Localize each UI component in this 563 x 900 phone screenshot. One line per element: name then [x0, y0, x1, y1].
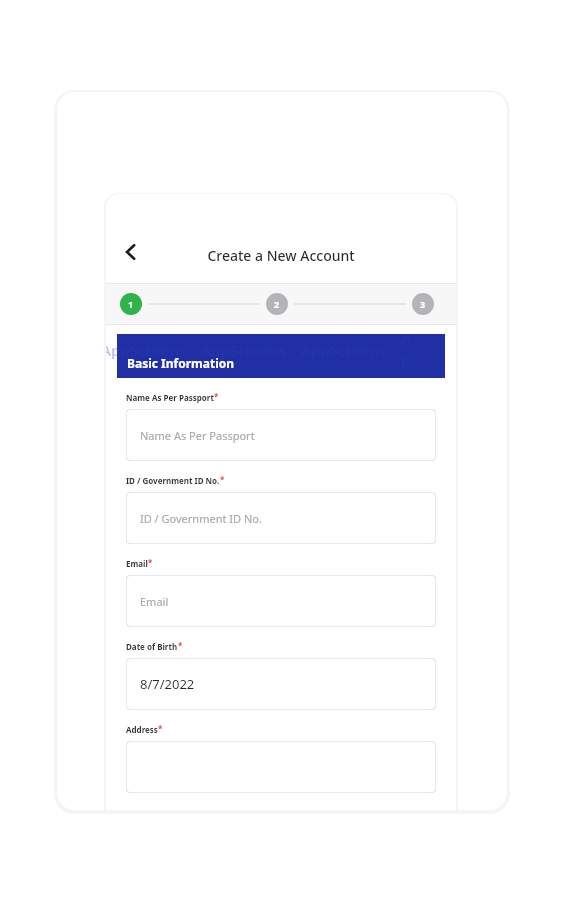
button[interactable]: Back [112, 233, 150, 271]
button[interactable]: ID / Government ID No. [126, 492, 436, 544]
staticText: ID / Government ID No. [140, 511, 262, 526]
staticText: ID / Government ID No. [126, 475, 220, 486]
staticText: Date of Birth [126, 641, 178, 652]
button[interactable]: Email [126, 575, 436, 627]
staticText: 1 [128, 298, 134, 310]
staticText: Basic Information [127, 355, 235, 371]
staticText: Create a New Account [207, 246, 355, 265]
staticText: * [148, 557, 153, 568]
staticText: * [178, 640, 183, 651]
staticText: * [214, 391, 219, 402]
staticText: Address [126, 724, 158, 735]
button[interactable] [126, 741, 436, 793]
staticText: AppScreens [401, 328, 415, 372]
staticText: AppScreens [201, 340, 287, 360]
staticText: Email [126, 558, 148, 569]
staticText: * [158, 723, 163, 734]
button[interactable]: Name As Per Passport [126, 409, 436, 461]
button[interactable]: 8/7/2022 [126, 658, 436, 710]
staticText: 8/7/2022 [140, 675, 195, 693]
staticText: 2 [274, 298, 280, 310]
staticText: AppScreens [106, 340, 187, 360]
staticText: * [220, 474, 225, 485]
staticText: 3 [420, 298, 426, 310]
staticText: Name As Per Passport [140, 428, 255, 443]
staticText: Name As Per Passport [126, 392, 214, 403]
button[interactable]: AppScreens [117, 334, 445, 378]
staticText: Email [140, 594, 169, 609]
